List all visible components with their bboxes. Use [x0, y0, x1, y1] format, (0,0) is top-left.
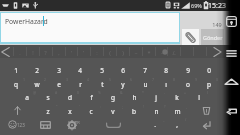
button[interactable]: l	[188, 90, 210, 104]
staticText: ,	[176, 120, 178, 129]
button[interactable]: Space	[86, 118, 146, 131]
button[interactable]: Shift	[8, 104, 28, 117]
button[interactable]: q	[5, 77, 27, 91]
staticText: o	[186, 80, 190, 89]
button[interactable]: Home	[224, 77, 239, 88]
staticText: c	[89, 107, 93, 116]
button[interactable]: s	[37, 90, 59, 104]
button[interactable]: 0	[198, 63, 220, 77]
button[interactable]: 9	[177, 63, 199, 77]
button[interactable]: .	[144, 117, 166, 131]
button[interactable]: b	[123, 104, 145, 118]
button[interactable]: p	[198, 77, 220, 91]
button[interactable]: 6	[112, 63, 134, 77]
staticText: ?	[44, 49, 47, 56]
button[interactable]: g	[102, 90, 124, 104]
button[interactable]: 3	[48, 63, 70, 77]
button[interactable]: f	[80, 90, 102, 104]
staticText: 123	[17, 122, 25, 128]
staticText: g	[111, 93, 115, 102]
button[interactable]: ı	[155, 77, 177, 91]
button[interactable]: Back	[224, 105, 239, 116]
button[interactable]: ,	[166, 117, 188, 131]
button[interactable]: d	[59, 90, 81, 104]
staticText: j	[155, 93, 157, 102]
staticText: r	[79, 80, 82, 89]
staticText: 2	[44, 77, 47, 82]
staticText: &	[120, 90, 123, 95]
staticText: 7	[152, 77, 155, 82]
button[interactable]: Settings	[64, 118, 82, 131]
button[interactable]: m	[166, 104, 188, 118]
staticText: y	[121, 80, 125, 89]
button[interactable]: PowerHazard	[0, 12, 180, 44]
staticText: 0	[207, 66, 211, 75]
staticText: /	[172, 49, 175, 56]
button[interactable]: 5	[91, 63, 113, 77]
staticText: ‘	[71, 49, 72, 56]
button[interactable]: Switch keyboard	[36, 118, 54, 131]
button[interactable]: a	[16, 90, 38, 104]
staticText: 5	[109, 77, 112, 82]
button[interactable]: App shortcut	[226, 16, 237, 27]
button[interactable]: Gönder	[201, 29, 224, 45]
button[interactable]: Enter	[196, 117, 216, 131]
staticText: @	[33, 90, 37, 95]
button[interactable]: j	[145, 90, 167, 104]
button[interactable]: o	[177, 77, 199, 91]
staticText: 8	[173, 77, 176, 82]
staticText: m	[174, 107, 181, 116]
staticText: PowerHazard	[5, 17, 48, 26]
button[interactable]: z	[37, 104, 59, 118]
staticText: 4	[78, 66, 82, 75]
button[interactable]: x	[59, 104, 81, 118]
button[interactable]: y	[112, 77, 134, 91]
button[interactable]: Emoji and numbers	[4, 118, 28, 131]
button[interactable]: n	[145, 104, 167, 118]
staticText: #	[55, 90, 58, 95]
button[interactable]: k	[166, 90, 188, 104]
button[interactable]: Next	[211, 45, 224, 58]
button[interactable]: h	[123, 90, 145, 104]
button[interactable]: c	[80, 104, 102, 118]
button[interactable]: w	[26, 77, 48, 91]
button[interactable]: Backspace	[196, 104, 216, 117]
staticText: !	[143, 104, 144, 109]
staticText: n	[154, 107, 159, 116]
button[interactable]: t	[91, 77, 113, 91]
staticText: %	[98, 90, 101, 95]
button[interactable]: Previous	[0, 45, 13, 58]
staticText: s	[46, 93, 50, 102]
staticText: p	[207, 80, 211, 89]
staticText: h	[132, 93, 137, 102]
button[interactable]: Recent apps	[225, 48, 238, 59]
staticText: b	[132, 107, 136, 116]
button[interactable]: 1	[5, 63, 27, 77]
button[interactable]: Attach file	[182, 29, 199, 45]
staticText: 2	[35, 66, 39, 75]
staticText: 9	[195, 77, 198, 82]
button[interactable]: 8	[155, 63, 177, 77]
staticText: ?	[164, 104, 166, 109]
staticText: ı	[165, 80, 167, 89]
staticText: 7	[143, 66, 147, 75]
staticText: w	[34, 80, 40, 89]
button[interactable]: v	[102, 104, 124, 118]
staticText: .	[154, 120, 156, 129]
staticText: 4	[87, 77, 90, 82]
button[interactable]: u	[134, 77, 156, 91]
staticText: a	[25, 93, 29, 102]
button[interactable]: 7	[134, 63, 156, 77]
staticText: Gönder	[203, 34, 223, 41]
staticText: _	[173, 48, 176, 55]
button[interactable]: 4	[69, 63, 91, 77]
staticText: z	[46, 107, 50, 116]
button[interactable]: 2	[26, 63, 48, 77]
button[interactable]: e	[48, 77, 70, 91]
staticText: k	[175, 93, 179, 102]
button[interactable]: r	[69, 77, 91, 91]
